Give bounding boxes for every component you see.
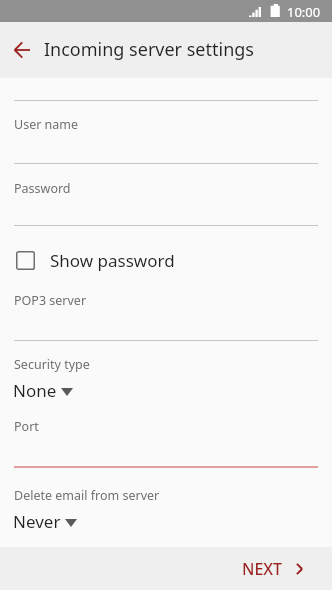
staticText: Incoming server settings bbox=[44, 37, 254, 62]
staticText: Delete email from server bbox=[14, 487, 160, 504]
button[interactable]: Navigate up bbox=[6, 22, 38, 78]
button[interactable]: NEXT bbox=[224, 549, 332, 589]
staticText: Never bbox=[13, 510, 61, 533]
button[interactable]: POP3 server bbox=[0, 280, 332, 340]
staticText: Show password bbox=[50, 249, 175, 272]
staticText: 10:00 bbox=[287, 3, 321, 21]
staticText: User name bbox=[14, 116, 79, 133]
staticText: Security type bbox=[14, 356, 90, 373]
staticText: POP3 server bbox=[14, 292, 87, 309]
staticText: None bbox=[13, 379, 57, 402]
button[interactable]: Delete email from server bbox=[0, 479, 332, 535]
button[interactable]: Show password bbox=[0, 243, 332, 278]
button[interactable]: User name bbox=[0, 101, 332, 163]
staticText: Password bbox=[14, 180, 71, 197]
staticText: Port bbox=[14, 418, 39, 435]
button[interactable]: Password bbox=[0, 164, 332, 225]
button[interactable]: Security type bbox=[0, 348, 332, 404]
button[interactable]: Port bbox=[0, 408, 332, 466]
staticText: NEXT bbox=[242, 558, 283, 580]
